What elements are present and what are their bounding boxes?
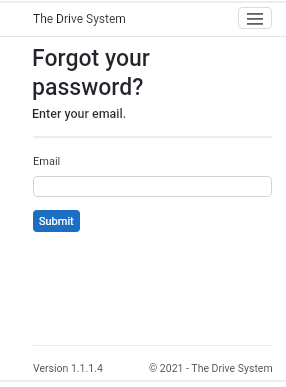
staticText: © 2021 - The Drive System [149,362,273,374]
button[interactable] [33,176,272,197]
staticText: Version 1.1.1.4 [33,362,103,374]
staticText: Email [33,155,61,168]
staticText: Forgot your password? [32,45,150,100]
button[interactable]: The Drive System [33,12,126,26]
button[interactable] [238,7,272,29]
staticText: Enter your email. [32,106,127,121]
staticText: Submit [39,215,74,228]
button[interactable]: Submit [33,210,80,232]
